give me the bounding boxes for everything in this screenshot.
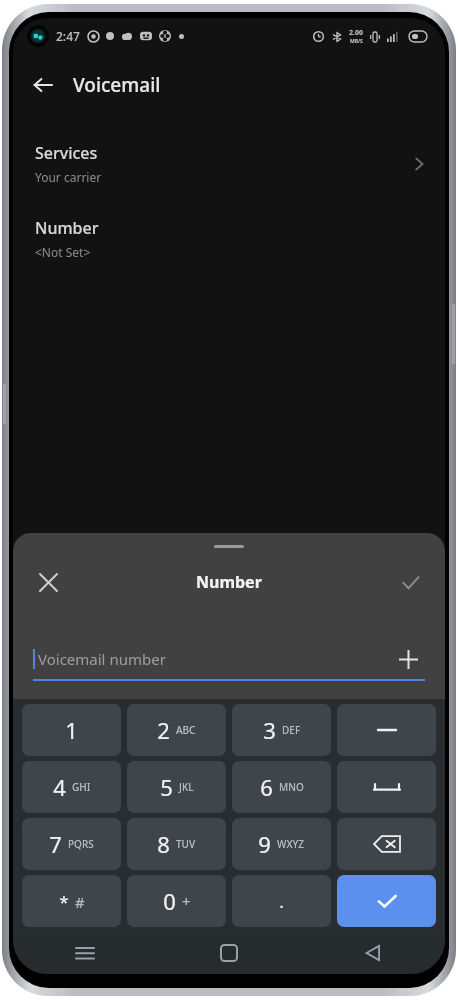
button[interactable]: Back <box>301 932 445 974</box>
button[interactable]: 8 <box>127 818 226 870</box>
staticText: JKL <box>179 780 194 794</box>
button[interactable]: Voicemail number <box>33 637 425 681</box>
staticText: DEF <box>282 723 301 737</box>
button[interactable]: Enter <box>337 875 436 927</box>
staticText: <Not Set> <box>35 244 91 260</box>
staticText: 8 <box>157 829 170 859</box>
staticText: 5 <box>160 772 173 802</box>
button[interactable]: 4 <box>22 761 121 813</box>
staticText: 2 <box>157 715 170 745</box>
staticText: 6 <box>260 772 273 802</box>
button[interactable]: 3 <box>232 704 331 756</box>
staticText: + <box>182 891 191 911</box>
staticText: WXYZ <box>277 837 305 851</box>
button[interactable]: * <box>22 875 121 927</box>
staticText: 2:47 <box>56 28 80 44</box>
staticText: 0 <box>163 886 176 916</box>
staticText: Number <box>196 571 262 593</box>
button[interactable]: Home <box>157 932 301 974</box>
staticText: GHI <box>72 780 91 794</box>
button[interactable]: 2 <box>127 704 226 756</box>
staticText: Voicemail <box>73 72 161 98</box>
button[interactable]: Confirm <box>389 561 431 603</box>
staticText: . <box>279 890 284 913</box>
button[interactable]: Dash <box>337 704 436 756</box>
staticText: # <box>75 892 85 912</box>
staticText: MNO <box>279 780 304 794</box>
staticText: Number <box>35 217 99 239</box>
button[interactable]: Close <box>27 561 69 603</box>
staticText: 1 <box>65 715 78 745</box>
staticText: MB/S <box>350 38 363 45</box>
staticText: PQRS <box>68 837 94 851</box>
staticText: 3 <box>263 715 276 745</box>
button[interactable]: Space <box>337 761 436 813</box>
button[interactable]: Backspace <box>337 818 436 870</box>
button[interactable]: Number <box>13 213 445 264</box>
button[interactable]: . <box>232 875 331 927</box>
staticText: 9 <box>258 829 271 859</box>
staticText: TUV <box>176 837 196 851</box>
staticText: Your carrier <box>35 169 102 185</box>
button[interactable]: 7 <box>22 818 121 870</box>
staticText: 4 <box>53 772 66 802</box>
staticText: Voicemail number <box>38 649 166 669</box>
button[interactable]: 9 <box>232 818 331 870</box>
button[interactable]: 5 <box>127 761 226 813</box>
button[interactable]: 0 <box>127 875 226 927</box>
button[interactable]: 1 <box>22 704 121 756</box>
staticText: * <box>59 890 69 913</box>
button[interactable]: Back <box>21 63 65 107</box>
button[interactable]: Add contact <box>391 642 425 676</box>
button[interactable]: Recents <box>13 932 157 974</box>
staticText: Services <box>35 142 98 164</box>
staticText: 7 <box>49 829 62 859</box>
staticText: ABC <box>176 723 196 737</box>
button[interactable]: 6 <box>232 761 331 813</box>
staticText: 2.00 <box>349 28 363 38</box>
button[interactable]: Services <box>13 138 445 189</box>
